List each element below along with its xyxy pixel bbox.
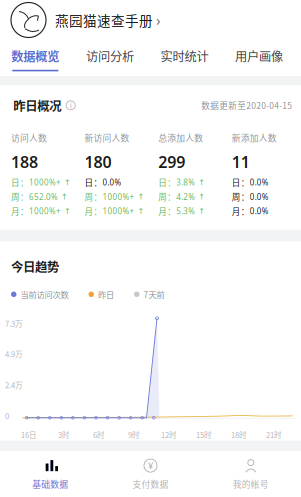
staticText: 11: [232, 151, 250, 172]
staticText: 1000%+: [103, 191, 135, 202]
staticText: 周：: [232, 191, 250, 203]
button[interactable]: 基础数据: [0, 451, 100, 497]
staticText: 月：: [85, 205, 103, 217]
staticText: 180: [85, 151, 112, 172]
staticText: 日：: [232, 176, 250, 189]
staticText: 7.3万: [5, 318, 23, 329]
staticText: 基础数据: [32, 478, 68, 490]
staticText: 652.0%: [29, 191, 58, 202]
staticText: 数据更新至2020-04-15: [201, 99, 292, 112]
staticText: ›: [156, 10, 161, 30]
staticText: 新添加人数: [232, 131, 277, 144]
staticText: 188: [11, 151, 38, 172]
staticText: 0: [5, 410, 9, 421]
staticText: ↑: [58, 192, 68, 201]
staticText: 2.4万: [5, 379, 23, 390]
button[interactable]: ¥: [100, 451, 201, 497]
button[interactable]: 数据概览: [0, 40, 73, 76]
staticText: ↑: [61, 178, 71, 187]
staticText: ↑: [135, 192, 145, 201]
staticText: 周：: [158, 191, 176, 203]
staticText: 今日趋势: [11, 257, 59, 275]
staticText: 16日: [21, 429, 36, 440]
staticText: 月：: [11, 205, 29, 217]
staticText: 1000%+: [29, 206, 61, 216]
staticText: ↑: [195, 207, 205, 216]
staticText: 数据概览: [11, 47, 59, 65]
staticText: 我的帐号: [233, 478, 269, 490]
staticText: ↑: [61, 207, 71, 216]
staticText: 0.0%: [250, 191, 269, 202]
staticText: 18时: [231, 429, 246, 440]
staticText: 支付数据: [132, 478, 168, 490]
staticText: 1000%+: [29, 177, 61, 188]
button[interactable]: 实时统计: [147, 40, 222, 76]
staticText: 21时: [266, 429, 281, 440]
staticText: 0.0%: [250, 206, 269, 216]
staticText: 4.2%: [176, 191, 195, 202]
staticText: 新访问人数: [85, 131, 130, 144]
staticText: ↑: [135, 207, 145, 216]
staticText: ¥: [148, 459, 153, 472]
staticText: 月：: [232, 205, 250, 217]
staticText: 昨日概况: [13, 96, 61, 114]
staticText: 日：: [158, 176, 176, 189]
staticText: ↑: [195, 192, 205, 201]
staticText: 3.8%: [176, 177, 195, 188]
staticText: 总添加人数: [158, 131, 203, 144]
staticText: 燕园猫速查手册: [55, 10, 153, 30]
staticText: 12时: [161, 429, 176, 440]
staticText: 昨日: [98, 288, 114, 300]
staticText: 当前访问次数: [20, 288, 68, 300]
staticText: 4.9万: [5, 348, 23, 359]
staticText: i: [70, 100, 72, 111]
button[interactable]: 燕园猫速查手册: [0, 0, 301, 40]
staticText: 用户画像: [235, 47, 283, 65]
staticText: 日：: [85, 176, 103, 189]
button[interactable]: 用户画像: [222, 40, 296, 76]
staticText: 6时: [93, 429, 104, 440]
staticText: 7天前: [143, 288, 164, 300]
staticText: 日：: [11, 176, 29, 189]
staticText: 访问分析: [86, 47, 134, 65]
button[interactable]: 我的帐号: [201, 451, 301, 497]
staticText: 5.3%: [176, 206, 195, 216]
staticText: 15时: [196, 429, 211, 440]
staticText: 0.0%: [103, 177, 122, 188]
staticText: 0.0%: [250, 177, 269, 188]
staticText: ↑: [195, 178, 205, 187]
staticText: 月：: [158, 205, 176, 217]
staticText: 实时统计: [160, 47, 208, 65]
staticText: 3时: [58, 429, 69, 440]
staticText: 访问人数: [11, 131, 47, 144]
staticText: 周：: [85, 191, 103, 203]
staticText: 299: [158, 151, 185, 172]
staticText: 1000%+: [103, 206, 135, 216]
staticText: 周：: [11, 191, 29, 203]
button[interactable]: 访问分析: [73, 40, 147, 76]
staticText: 9时: [128, 429, 139, 440]
